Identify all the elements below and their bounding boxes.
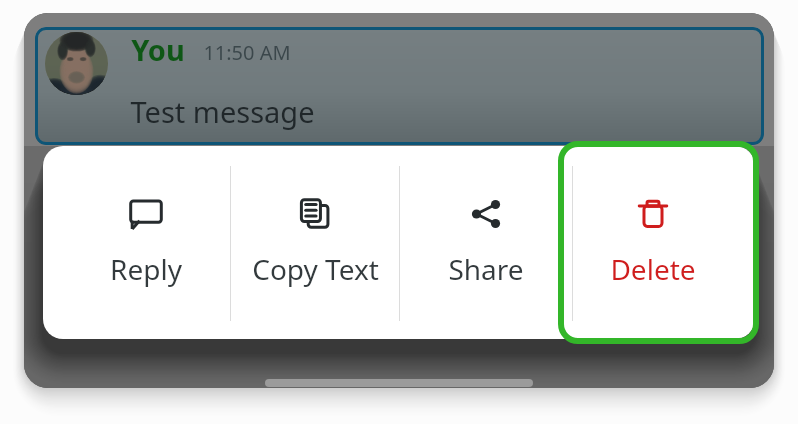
staticText: 11:50 AM <box>203 39 291 66</box>
button[interactable]: Copy Text <box>231 146 399 339</box>
staticText: Copy Text <box>252 250 379 288</box>
button[interactable]: Share <box>400 146 572 339</box>
button[interactable]: Delete <box>573 146 732 339</box>
staticText: Reply <box>110 250 182 288</box>
button[interactable]: You <box>35 27 764 145</box>
staticText: Share <box>448 250 524 288</box>
staticText: Delete <box>610 250 696 288</box>
staticText: You <box>131 30 185 69</box>
staticText: Test message <box>130 92 315 131</box>
button[interactable]: Reply <box>61 146 230 339</box>
